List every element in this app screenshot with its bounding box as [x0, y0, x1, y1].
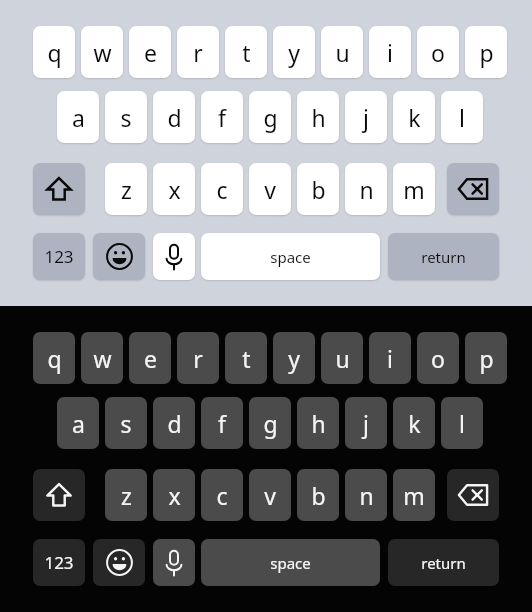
- staticText: j: [363, 102, 369, 133]
- button[interactable]: r: [177, 26, 219, 78]
- button[interactable]: a: [57, 91, 99, 143]
- staticText: 123: [44, 245, 74, 268]
- button[interactable]: p: [465, 332, 507, 384]
- staticText: t: [242, 37, 251, 68]
- staticText: z: [121, 174, 132, 205]
- staticText: y: [288, 37, 300, 68]
- button[interactable]: f: [201, 397, 243, 449]
- button[interactable]: g: [249, 91, 291, 143]
- button[interactable]: n: [345, 469, 387, 521]
- button[interactable]: w: [81, 26, 123, 78]
- button[interactable]: m: [393, 469, 435, 521]
- staticText: 123: [44, 551, 74, 574]
- button[interactable]: Emoji: [93, 539, 145, 586]
- button[interactable]: s: [105, 397, 147, 449]
- staticText: a: [72, 102, 85, 133]
- button[interactable]: z: [105, 163, 147, 215]
- staticText: f: [218, 408, 226, 439]
- staticText: m: [403, 480, 425, 511]
- button[interactable]: i: [369, 26, 411, 78]
- button[interactable]: o: [417, 26, 459, 78]
- button[interactable]: x: [153, 163, 195, 215]
- staticText: c: [216, 174, 228, 205]
- staticText: b: [311, 174, 326, 205]
- staticText: i: [387, 37, 393, 68]
- button[interactable]: c: [201, 469, 243, 521]
- button[interactable]: k: [393, 397, 435, 449]
- button[interactable]: Emoji: [93, 233, 145, 280]
- button[interactable]: return: [388, 233, 499, 280]
- button[interactable]: y: [273, 332, 315, 384]
- button[interactable]: t: [225, 332, 267, 384]
- staticText: m: [403, 174, 425, 205]
- button[interactable]: Shift: [33, 469, 85, 521]
- staticText: y: [288, 343, 300, 374]
- button[interactable]: e: [129, 26, 171, 78]
- staticText: o: [431, 343, 445, 374]
- staticText: w: [93, 37, 112, 68]
- staticText: k: [408, 408, 421, 439]
- staticText: q: [47, 37, 62, 68]
- button[interactable]: c: [201, 163, 243, 215]
- staticText: g: [263, 408, 278, 439]
- button[interactable]: j: [345, 91, 387, 143]
- button[interactable]: space: [201, 539, 380, 586]
- button[interactable]: f: [201, 91, 243, 143]
- staticText: h: [311, 408, 326, 439]
- button[interactable]: 123: [33, 539, 85, 586]
- button[interactable]: d: [153, 91, 195, 143]
- staticText: return: [421, 247, 466, 267]
- staticText: b: [311, 480, 326, 511]
- button[interactable]: g: [249, 397, 291, 449]
- button[interactable]: y: [273, 26, 315, 78]
- button[interactable]: v: [249, 469, 291, 521]
- button[interactable]: b: [297, 163, 339, 215]
- button[interactable]: b: [297, 469, 339, 521]
- button[interactable]: Voice input: [153, 539, 195, 586]
- staticText: e: [144, 37, 157, 68]
- button[interactable]: h: [297, 91, 339, 143]
- button[interactable]: x: [153, 469, 195, 521]
- button[interactable]: v: [249, 163, 291, 215]
- button[interactable]: k: [393, 91, 435, 143]
- staticText: g: [263, 102, 278, 133]
- staticText: p: [479, 343, 494, 374]
- button[interactable]: n: [345, 163, 387, 215]
- button[interactable]: Shift: [33, 163, 85, 215]
- button[interactable]: m: [393, 163, 435, 215]
- staticText: l: [459, 102, 465, 133]
- button[interactable]: l: [441, 91, 483, 143]
- button[interactable]: s: [105, 91, 147, 143]
- button[interactable]: 123: [33, 233, 85, 280]
- button[interactable]: j: [345, 397, 387, 449]
- button[interactable]: t: [225, 26, 267, 78]
- staticText: e: [144, 343, 157, 374]
- staticText: space: [270, 247, 311, 267]
- button[interactable]: u: [321, 26, 363, 78]
- button[interactable]: z: [105, 469, 147, 521]
- button[interactable]: l: [441, 397, 483, 449]
- button[interactable]: h: [297, 397, 339, 449]
- button[interactable]: Backspace: [447, 469, 499, 521]
- staticText: v: [264, 480, 276, 511]
- button[interactable]: p: [465, 26, 507, 78]
- button[interactable]: w: [81, 332, 123, 384]
- button[interactable]: i: [369, 332, 411, 384]
- button[interactable]: u: [321, 332, 363, 384]
- button[interactable]: o: [417, 332, 459, 384]
- button[interactable]: q: [33, 26, 75, 78]
- staticText: n: [359, 480, 374, 511]
- button[interactable]: r: [177, 332, 219, 384]
- button[interactable]: space: [201, 233, 380, 280]
- button[interactable]: Voice input: [153, 233, 195, 280]
- staticText: p: [479, 37, 494, 68]
- button[interactable]: e: [129, 332, 171, 384]
- staticText: i: [387, 343, 393, 374]
- button[interactable]: a: [57, 397, 99, 449]
- button[interactable]: d: [153, 397, 195, 449]
- staticText: k: [408, 102, 421, 133]
- button[interactable]: return: [388, 539, 499, 586]
- button[interactable]: Backspace: [447, 163, 499, 215]
- staticText: o: [431, 37, 445, 68]
- button[interactable]: q: [33, 332, 75, 384]
